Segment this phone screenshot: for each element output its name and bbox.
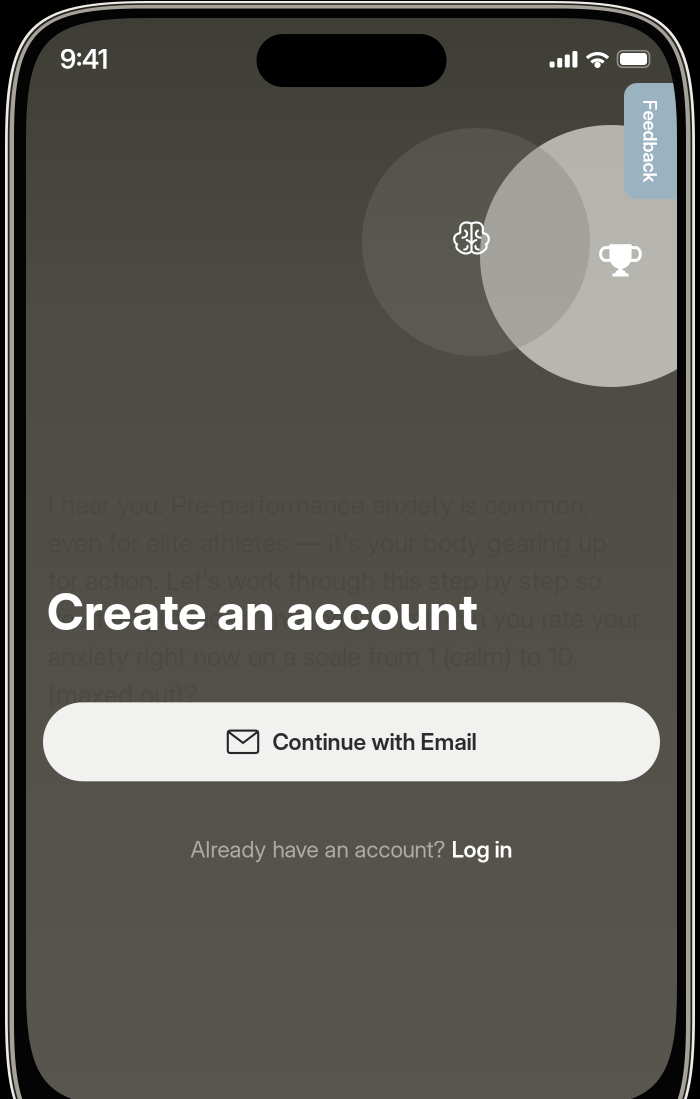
button[interactable]: Continue with Email: [43, 702, 660, 781]
staticText: Already have an account?: [190, 836, 451, 863]
staticText: Create an account: [47, 581, 478, 642]
staticText: you feel grounded and ready. First, can …: [48, 603, 640, 634]
button[interactable]: Feedback: [624, 83, 694, 199]
staticText: Continue with Email: [272, 728, 476, 755]
staticText: 9:41: [60, 43, 108, 75]
staticText: Log in: [451, 836, 512, 863]
button[interactable]: Already have an account?: [43, 823, 660, 875]
staticText: Feedback: [608, 130, 691, 152]
staticText: for action. Let's work through this step…: [48, 565, 602, 596]
staticText: (maxed out)?: [48, 679, 198, 710]
